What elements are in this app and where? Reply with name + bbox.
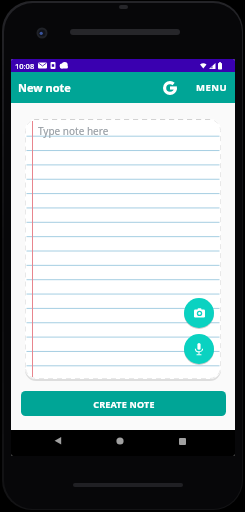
staticText: CREATE NOTE bbox=[93, 398, 155, 410]
button[interactable]: CREATE NOTE bbox=[21, 391, 226, 416]
button[interactable] bbox=[111, 432, 129, 450]
button[interactable] bbox=[184, 298, 214, 328]
button[interactable] bbox=[160, 78, 180, 98]
staticText: MENU bbox=[196, 81, 228, 94]
button[interactable] bbox=[184, 334, 214, 364]
staticText: Type note here bbox=[38, 124, 109, 138]
staticText: 10:08 bbox=[15, 61, 35, 71]
button[interactable]: MENU bbox=[196, 77, 228, 98]
button[interactable] bbox=[49, 432, 67, 450]
button[interactable] bbox=[173, 432, 191, 450]
staticText: New note bbox=[18, 80, 71, 95]
